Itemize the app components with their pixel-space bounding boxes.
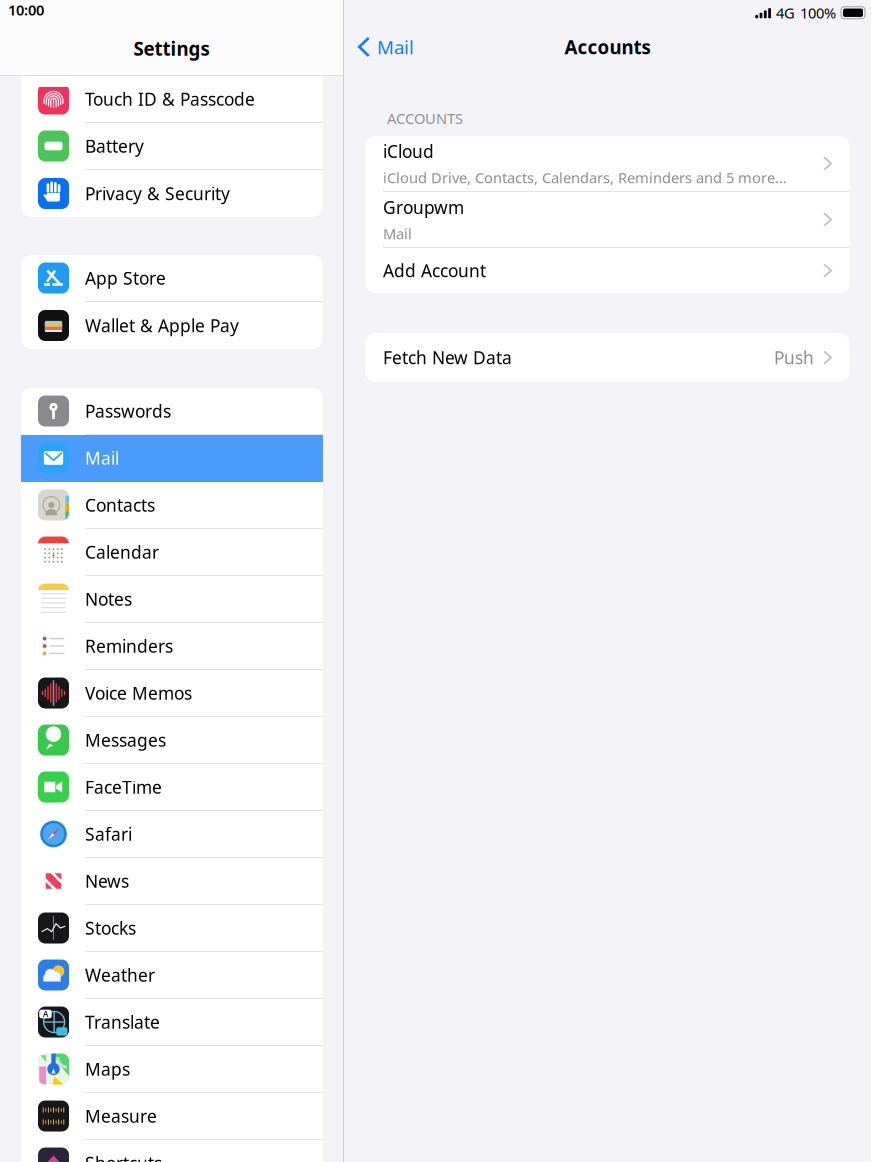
button[interactable]: Battery	[21, 123, 323, 170]
button[interactable]: Touch ID & Passcode	[21, 76, 323, 123]
staticText: Accounts	[564, 34, 650, 59]
button[interactable]: Calendar	[21, 529, 323, 576]
staticText: Add Account	[383, 259, 486, 282]
staticText: 4G	[776, 3, 795, 22]
staticText: Wallet & Apple Pay	[85, 314, 239, 337]
staticText: iCloud	[383, 140, 434, 163]
staticText: Mail	[85, 446, 119, 469]
staticText: Mail	[383, 224, 412, 243]
button[interactable]: Mail	[344, 29, 424, 75]
staticText: Settings	[133, 36, 209, 61]
staticText: Touch ID & Passcode	[85, 87, 255, 110]
staticText: Stocks	[85, 916, 136, 939]
staticText: Groupwm	[383, 196, 464, 219]
staticText: Battery	[85, 134, 144, 157]
staticText: FaceTime	[85, 775, 162, 798]
staticText: Reminders	[85, 634, 173, 657]
button[interactable]: Fetch New Data	[365, 333, 850, 382]
staticText: Passwords	[85, 399, 171, 422]
button[interactable]: Weather	[21, 952, 323, 999]
staticText: Shortcuts	[85, 1151, 162, 1162]
staticText: App Store	[85, 266, 166, 289]
staticText: ACCOUNTS	[387, 108, 463, 128]
staticText: Push	[774, 346, 814, 369]
staticText: Privacy & Security	[85, 182, 230, 205]
button[interactable]: A	[21, 999, 323, 1046]
button[interactable]: Groupwm	[365, 192, 850, 248]
staticText: Fetch New Data	[383, 346, 512, 369]
staticText: Contacts	[85, 493, 155, 516]
button[interactable]: Safari	[21, 811, 323, 858]
button[interactable]: Messages	[21, 717, 323, 764]
button[interactable]: Voice Memos	[21, 670, 323, 717]
button[interactable]: Measure	[21, 1093, 323, 1140]
staticText: 100%	[800, 3, 836, 22]
button[interactable]: FaceTime	[21, 764, 323, 811]
button[interactable]: Mail	[21, 435, 323, 482]
button[interactable]: Add Account	[365, 248, 850, 293]
button[interactable]: News	[21, 858, 323, 905]
button[interactable]: App Store	[21, 255, 323, 302]
button[interactable]: Maps	[21, 1046, 323, 1093]
button[interactable]: Wallet & Apple Pay	[21, 302, 323, 349]
staticText: Translate	[85, 1010, 160, 1033]
button[interactable]: Shortcuts	[21, 1140, 323, 1162]
button[interactable]: Contacts	[21, 482, 323, 529]
staticText: Voice Memos	[85, 681, 192, 704]
staticText: 10:00	[8, 0, 44, 19]
button[interactable]: Notes	[21, 576, 323, 623]
staticText: Weather	[85, 963, 155, 986]
staticText: Measure	[85, 1104, 157, 1127]
button[interactable]: iCloud	[365, 136, 850, 192]
button[interactable]: Passwords	[21, 388, 323, 435]
button[interactable]: Privacy & Security	[21, 170, 323, 217]
staticText: Mail	[377, 34, 414, 59]
staticText: iCloud Drive, Contacts, Calendars, Remin…	[383, 168, 787, 187]
staticText: Messages	[85, 728, 166, 751]
staticText: A	[43, 1009, 48, 1019]
staticText: Calendar	[85, 540, 159, 563]
staticText: Safari	[85, 822, 132, 845]
button[interactable]: Stocks	[21, 905, 323, 952]
staticText: Notes	[85, 587, 132, 610]
button[interactable]: Reminders	[21, 623, 323, 670]
staticText: News	[85, 869, 129, 892]
staticText: Maps	[85, 1057, 130, 1080]
